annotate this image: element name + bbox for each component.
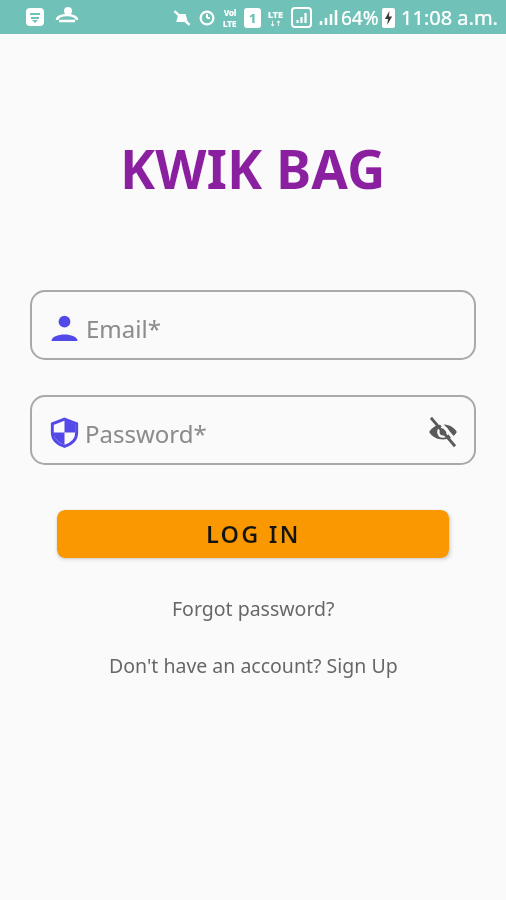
staticText: Email* [86, 312, 161, 345]
button[interactable]: Don't have an account? Sign Up [109, 652, 398, 679]
button[interactable] [428, 417, 458, 447]
button[interactable]: Email* [30, 290, 476, 360]
staticText: Password* [85, 417, 207, 450]
staticText: LOG IN [206, 518, 301, 550]
staticText: Forgot password? [172, 595, 335, 622]
staticText: LTE [223, 18, 237, 29]
staticText: 11:08 a.m. [401, 4, 498, 31]
staticText: 64% [341, 5, 379, 31]
staticText: 1 [249, 9, 257, 27]
button[interactable]: LOG IN [57, 510, 449, 558]
staticText: KWIK BAG [120, 132, 386, 204]
button[interactable]: Password* [30, 395, 476, 465]
staticText: Don't have an account? Sign Up [109, 652, 398, 679]
staticText: Vol [224, 7, 237, 18]
staticText: ↓↑ [270, 20, 282, 28]
staticText: LTE [268, 8, 284, 20]
button[interactable]: Forgot password? [172, 595, 335, 622]
